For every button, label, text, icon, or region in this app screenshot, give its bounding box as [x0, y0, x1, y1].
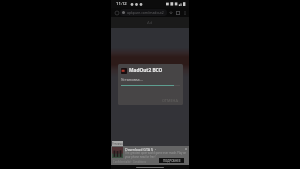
staticText: Реклама	[112, 142, 123, 146]
button[interactable]: Close ad	[184, 147, 188, 151]
staticText: Установка...	[121, 77, 143, 82]
staticText: The greatest open world game ever made. …	[125, 151, 187, 155]
button[interactable]: Downloads	[167, 9, 174, 16]
button[interactable]: Home	[113, 9, 120, 16]
staticText: ПОДРОБНЕЕ	[163, 159, 181, 163]
button[interactable]: ПОДРОБНЕЕ	[159, 158, 184, 163]
staticText: apkpure.com/madout2	[127, 10, 164, 15]
button[interactable]: More options	[181, 9, 188, 16]
staticText: 11:12	[116, 1, 127, 7]
staticText: Download GTA 5 ·	[125, 147, 156, 152]
button[interactable]: Tabs	[174, 9, 181, 16]
staticText: ОТМЕНА	[162, 98, 178, 103]
staticText: Confidentialité · Conditions	[113, 160, 146, 164]
button[interactable]: apkpure.com/madout2	[120, 9, 167, 16]
button[interactable]: ОТМЕНА	[160, 96, 180, 105]
staticText: your phone now for free!	[125, 155, 156, 159]
staticText: Ad	[147, 20, 153, 26]
staticText: MadOut2 BCO	[129, 67, 163, 74]
